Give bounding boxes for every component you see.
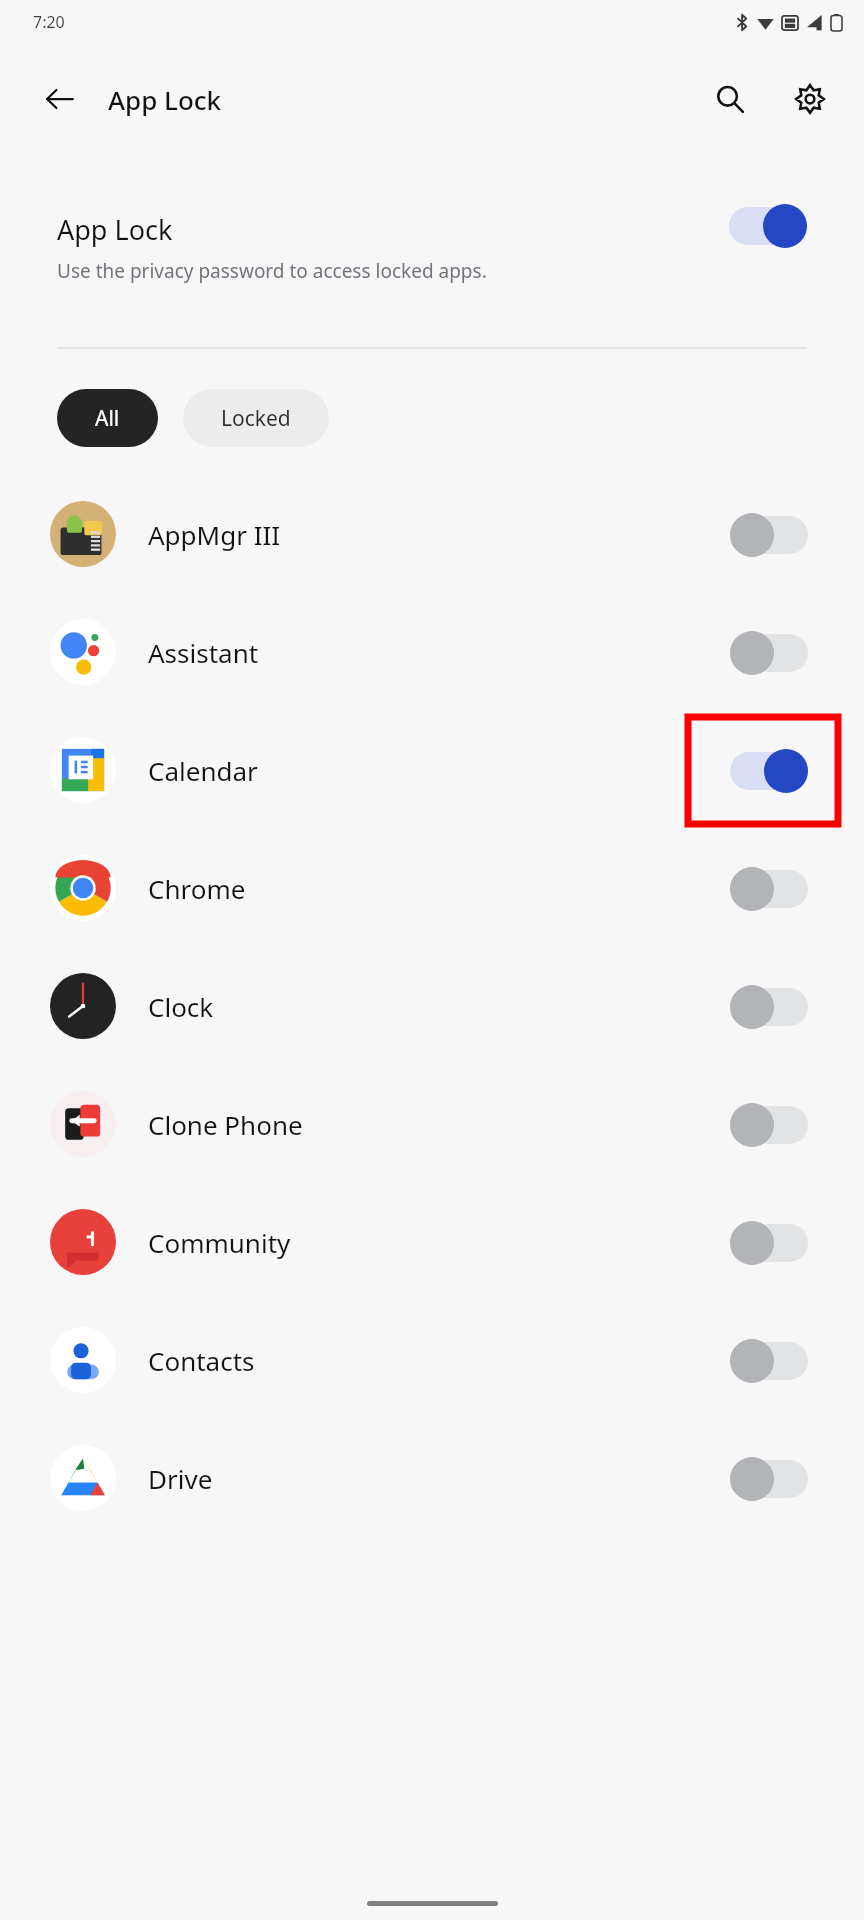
staticText: AppMgr III bbox=[148, 517, 281, 552]
button[interactable]: AppMgr III bbox=[0, 475, 864, 593]
button[interactable]: Off bbox=[730, 1103, 808, 1147]
staticText: Clone Phone bbox=[148, 1107, 303, 1142]
button[interactable]: On bbox=[730, 749, 808, 793]
button[interactable]: Search bbox=[700, 69, 760, 129]
button[interactable]: Off bbox=[730, 1457, 808, 1501]
button[interactable]: Off bbox=[730, 1221, 808, 1265]
button[interactable]: On bbox=[729, 204, 807, 248]
button[interactable]: Off bbox=[730, 867, 808, 911]
staticText: 7:20 bbox=[33, 11, 65, 33]
button[interactable]: Locked bbox=[183, 389, 329, 447]
staticText: Clock bbox=[148, 989, 214, 1024]
button[interactable]: All bbox=[57, 389, 158, 447]
button[interactable]: Off bbox=[730, 1339, 808, 1383]
button[interactable]: Settings bbox=[780, 69, 840, 129]
staticText: Calendar bbox=[148, 753, 258, 788]
staticText: Chrome bbox=[148, 871, 246, 906]
button[interactable]: Clock bbox=[0, 947, 864, 1065]
button[interactable]: Chrome bbox=[0, 829, 864, 947]
button[interactable]: Assistant bbox=[0, 593, 864, 711]
staticText: App Lock bbox=[57, 211, 173, 248]
staticText: App Lock bbox=[108, 82, 222, 117]
button[interactable]: Clone Phone bbox=[0, 1065, 864, 1183]
staticText: All bbox=[95, 404, 120, 433]
button[interactable]: App Lock bbox=[0, 154, 864, 349]
button[interactable]: Off bbox=[730, 985, 808, 1029]
staticText: Community bbox=[148, 1225, 291, 1260]
staticText: Locked bbox=[221, 404, 291, 433]
button[interactable]: Community bbox=[0, 1183, 864, 1301]
button[interactable]: Off bbox=[730, 631, 808, 675]
staticText: Use the privacy password to access locke… bbox=[57, 258, 487, 284]
button[interactable]: Calendar bbox=[0, 711, 864, 829]
staticText: Contacts bbox=[148, 1343, 255, 1378]
button[interactable]: Off bbox=[730, 513, 808, 557]
staticText: Assistant bbox=[148, 635, 259, 670]
button[interactable]: Drive bbox=[0, 1419, 864, 1537]
button[interactable]: Back bbox=[32, 71, 88, 127]
staticText: Drive bbox=[148, 1461, 213, 1496]
button[interactable]: Contacts bbox=[0, 1301, 864, 1419]
